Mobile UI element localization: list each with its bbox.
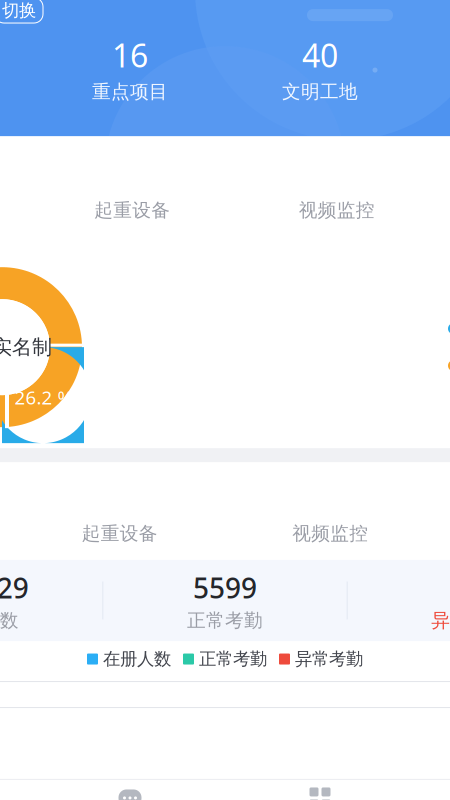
staticText: 在册人数 [0,609,19,632]
button[interactable]: 起重设备 [82,194,182,227]
button[interactable]: 消息 [35,786,225,800]
staticText: 视频监控 [299,199,375,222]
button[interactable]: 起重设备 [70,517,170,550]
staticText: 16 [112,34,148,76]
staticText: 视频监控 [292,522,368,545]
staticText: 正常考勤 [199,648,267,670]
staticText: 文明工地 [282,80,358,103]
staticText: 重点项目 [92,80,168,103]
staticText: 异常考勤 [431,609,450,632]
button[interactable]: 应用 [225,786,415,800]
staticText: 切换 [2,0,36,21]
staticText: 102929 [0,569,29,606]
staticText: 起重设备 [82,522,158,545]
staticText: 5599 [193,569,257,606]
button[interactable]: 广西建工 [0,0,43,26]
button[interactable]: 视频监控 [280,517,380,550]
staticText: 26.2 % [14,385,73,410]
staticText: 正常考勤 [187,609,263,632]
staticText: 劳务实名制 [0,335,52,359]
button[interactable]: 视频监控 [287,194,387,227]
staticText: 在册人数 [103,648,171,670]
staticText: 异常考勤 [295,648,363,670]
staticText: 40 [302,34,338,76]
staticText: 起重设备 [94,199,170,222]
